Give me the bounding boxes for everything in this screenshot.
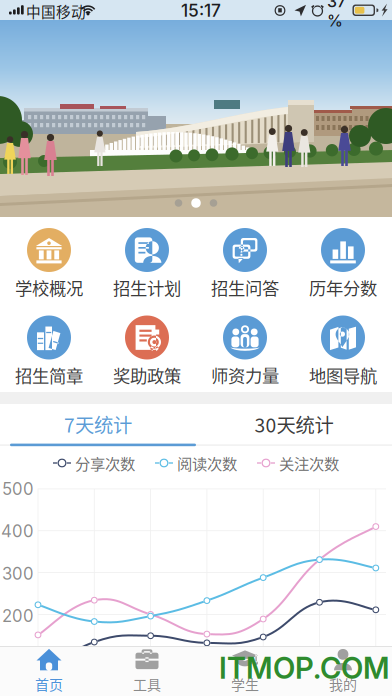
button[interactable]: 招生简章 bbox=[0, 304, 98, 392]
staticText: 15:17 bbox=[181, 0, 221, 21]
button[interactable]: 工具 bbox=[98, 647, 196, 695]
button[interactable]: 7天统计 bbox=[0, 404, 196, 444]
staticText: 关注次数 bbox=[279, 452, 339, 474]
staticText: 我的 bbox=[329, 674, 357, 694]
button[interactable]: 学生 bbox=[196, 647, 294, 695]
staticText: 师资力量 bbox=[211, 362, 279, 388]
staticText: 工具 bbox=[133, 674, 161, 694]
staticText: 奖助政策 bbox=[113, 362, 181, 388]
staticText: 400 bbox=[1, 521, 34, 541]
button[interactable]: 地图导航 bbox=[294, 304, 392, 392]
button[interactable]: 首页 bbox=[0, 647, 98, 695]
staticText: 300 bbox=[2, 563, 34, 584]
staticText: 37% bbox=[327, 0, 346, 30]
staticText: 招生问答 bbox=[211, 275, 279, 300]
staticText: 7天统计 bbox=[64, 410, 132, 438]
staticText: 200 bbox=[2, 606, 34, 626]
staticText: 分享次数 bbox=[75, 452, 135, 474]
button[interactable]: 我的 bbox=[294, 647, 392, 695]
button[interactable]: 招生问答 bbox=[196, 217, 294, 305]
button[interactable]: 学校概况 bbox=[0, 217, 98, 305]
staticText: ITMOP.COM bbox=[219, 650, 390, 686]
staticText: 地图导航 bbox=[309, 362, 377, 388]
staticText: 历年分数 bbox=[309, 275, 377, 300]
staticText: 30天统计 bbox=[254, 410, 333, 438]
button[interactable]: 奖助政策 bbox=[98, 304, 196, 392]
staticText: 首页 bbox=[35, 674, 63, 694]
staticText: 中国移动 bbox=[26, 0, 86, 22]
staticText: 学校概况 bbox=[15, 275, 83, 300]
button[interactable]: 招生计划 bbox=[98, 217, 196, 305]
button[interactable]: 历年分数 bbox=[294, 217, 392, 305]
staticText: 招生计划 bbox=[113, 275, 181, 300]
staticText: 学生 bbox=[231, 674, 259, 694]
staticText: 阅读次数 bbox=[177, 452, 237, 474]
button[interactable]: 师资力量 bbox=[196, 304, 294, 392]
staticText: 500 bbox=[2, 479, 34, 499]
staticText: 招生简章 bbox=[15, 362, 83, 388]
button[interactable]: 30天统计 bbox=[196, 404, 392, 444]
